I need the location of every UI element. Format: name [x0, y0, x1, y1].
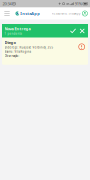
staticText: Observação: [4, 54, 19, 58]
staticText: Endereço: Rua José Verdinick, 355 [4, 46, 53, 49]
staticText: 20:34 [2, 1, 11, 6]
staticText: Restaurante InstaApp [52, 12, 81, 15]
staticText: Diego [4, 40, 16, 45]
staticText: Nova Entrega [4, 26, 30, 31]
staticText: InstaApp [20, 11, 40, 16]
button[interactable]: Account [81, 11, 88, 16]
staticText: Bairro: Vila Regina [4, 50, 30, 53]
button[interactable]: Reject delivery [77, 25, 86, 37]
staticText: 91% [75, 1, 82, 6]
staticText: 1 pendente [4, 32, 22, 35]
button[interactable]: Accept delivery [68, 25, 77, 37]
button[interactable]: Menu [1, 8, 12, 19]
